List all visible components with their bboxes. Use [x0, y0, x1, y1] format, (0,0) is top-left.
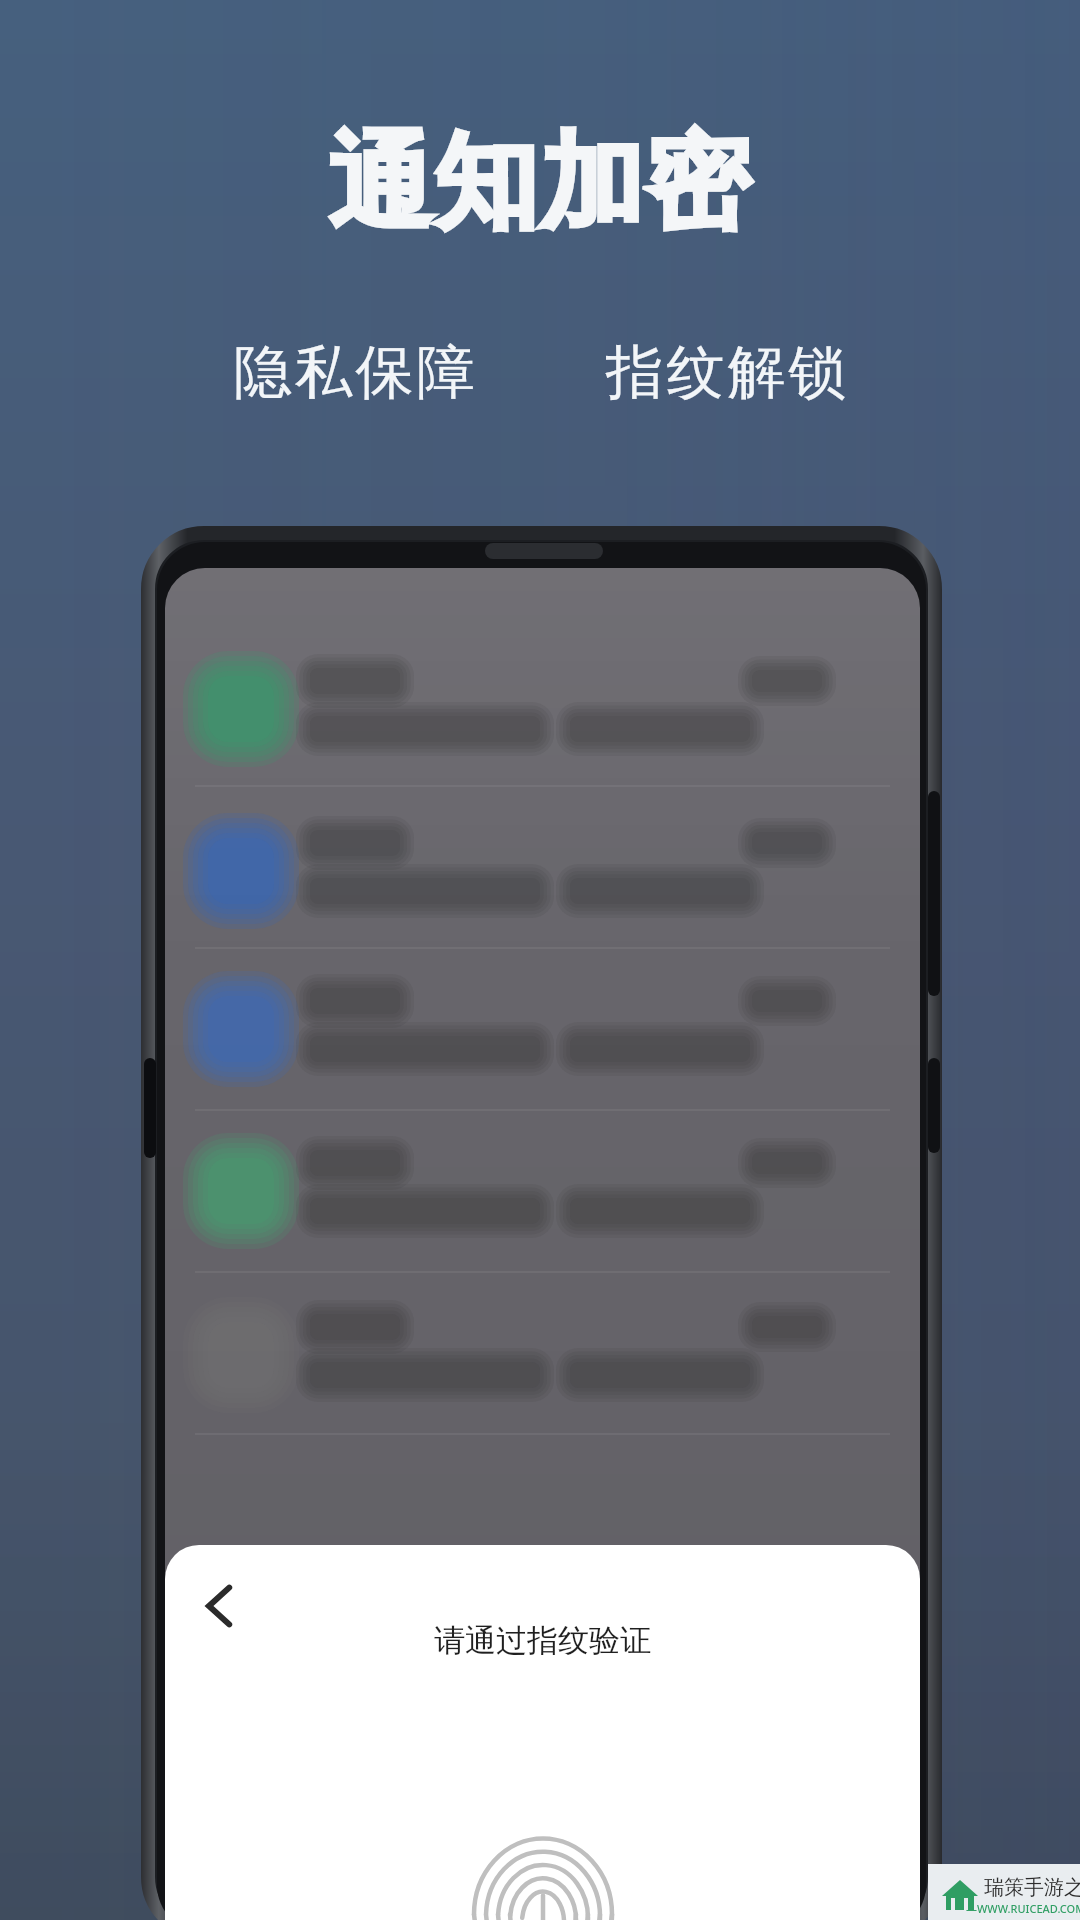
staticText: 指纹解锁	[604, 336, 848, 409]
staticText: 隐私保障	[232, 336, 476, 409]
staticText: 通知加密	[0, 118, 1080, 249]
button[interactable]: 返回	[175, 1561, 265, 1651]
button[interactable]: 指纹验证	[468, 1827, 618, 1920]
staticText: —WWW.RUICEAD.COM—	[966, 1901, 1080, 1916]
staticText: 请通过指纹验证	[165, 1621, 920, 1660]
staticText: 瑞策手游之家	[984, 1875, 1080, 1900]
